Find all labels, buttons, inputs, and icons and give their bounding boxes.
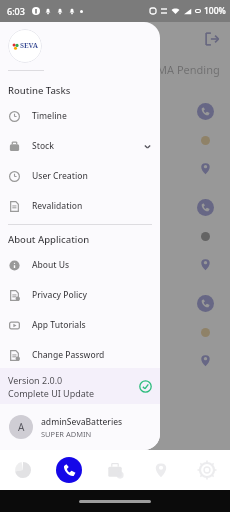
button[interactable]: Version 2.0.0 (0, 368, 160, 404)
button[interactable]: Stock (0, 131, 160, 161)
button[interactable]: Settings (184, 450, 230, 490)
button[interactable]: Call (197, 295, 214, 312)
button[interactable]: Privacy Policy (0, 280, 160, 310)
staticText: DMA Pending (149, 62, 220, 77)
staticText: 6:03 (7, 5, 25, 17)
staticText: Routine Tasks (8, 84, 71, 97)
staticText: User Creation (32, 170, 88, 182)
staticText: SUPER ADMIN (41, 429, 92, 439)
button[interactable]: A (0, 404, 160, 450)
staticText: adminSevaBatteries (41, 416, 123, 428)
button[interactable]: App Tutorials (0, 310, 160, 340)
staticText: About Us (32, 259, 70, 271)
button[interactable]: Orders (92, 450, 138, 490)
staticText: SEVA (20, 41, 39, 51)
staticText: Revalidation (32, 200, 83, 212)
button[interactable]: Revalidation (0, 191, 160, 221)
button[interactable]: Change Password (0, 340, 160, 370)
button[interactable]: About Us (0, 250, 160, 280)
staticText: Version 2.0.0 (8, 374, 63, 386)
button[interactable]: Logout (202, 29, 222, 49)
button[interactable]: Call (197, 103, 214, 120)
button[interactable]: Calls (56, 457, 82, 483)
button[interactable]: Call (197, 199, 214, 216)
staticText: 100% (204, 5, 226, 17)
staticText: Privacy Policy (32, 289, 87, 301)
button[interactable]: Map (138, 450, 184, 490)
staticText: Complete UI Update (8, 387, 95, 399)
staticText: A (18, 420, 25, 434)
staticText: About Application (8, 233, 90, 246)
staticText: App Tutorials (32, 319, 86, 331)
staticText: Stock (32, 140, 55, 152)
button[interactable]: User Creation (0, 161, 160, 191)
button[interactable]: Dashboard (0, 450, 46, 490)
staticText: Timeline (32, 110, 67, 122)
staticText: Change Password (32, 349, 105, 361)
button[interactable]: Timeline (0, 101, 160, 131)
